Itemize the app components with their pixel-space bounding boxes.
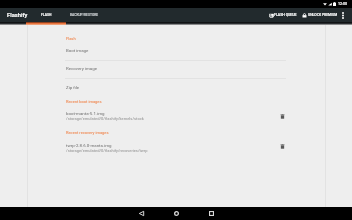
staticText: boot-manta-5.1.img bbox=[66, 111, 105, 116]
staticText: /storage/emulated/0/flashify/recoveries/… bbox=[66, 148, 148, 153]
button[interactable]: Delete bbox=[276, 111, 289, 122]
button[interactable]: BACKUP/RESTORE bbox=[66, 8, 102, 22]
button[interactable]: twrp-2.8.6.0-manta.img bbox=[28, 138, 325, 158]
button[interactable]: Home bbox=[166, 207, 186, 220]
staticText: Zip file bbox=[66, 85, 80, 90]
staticText: 12:00 bbox=[338, 2, 348, 6]
staticText: Flash bbox=[66, 36, 76, 41]
staticText: UNLOCK PREMIUM bbox=[308, 13, 338, 17]
staticText: twrp-2.8.6.0-manta.img bbox=[66, 143, 112, 148]
button[interactable]: Recovery image bbox=[28, 61, 325, 78]
button[interactable]: Boot image bbox=[28, 42, 325, 60]
button[interactable]: boot-manta-5.1.img bbox=[28, 106, 325, 126]
staticText: FLASH QUEUE bbox=[274, 13, 297, 17]
staticText: Recent boot images bbox=[66, 99, 102, 104]
button[interactable]: Recent apps bbox=[201, 207, 221, 220]
staticText: /storage/emulated/0/flashify/kernels/sto… bbox=[66, 116, 144, 121]
button[interactable]: UNLOCK PREMIUM bbox=[300, 10, 340, 20]
button[interactable]: Zip file bbox=[28, 79, 325, 96]
button[interactable]: More options bbox=[338, 8, 347, 22]
button[interactable]: Back bbox=[131, 207, 151, 220]
button[interactable]: Delete bbox=[276, 141, 289, 152]
staticText: BACKUP/RESTORE bbox=[70, 13, 99, 17]
button[interactable]: FLASH QUEUE bbox=[267, 10, 299, 20]
button[interactable]: FLASH bbox=[26, 8, 66, 22]
staticText: Recovery image bbox=[66, 66, 98, 71]
staticText: FLASH bbox=[41, 13, 52, 17]
staticText: Flashify bbox=[7, 12, 28, 19]
staticText: Boot image bbox=[66, 48, 89, 53]
staticText: Recent recovery images bbox=[66, 130, 109, 135]
